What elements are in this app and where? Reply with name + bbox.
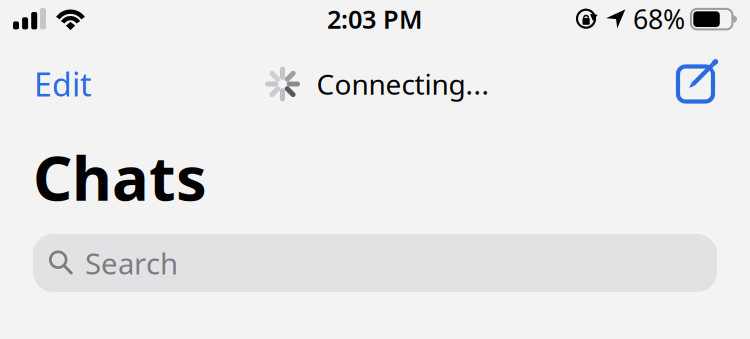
- staticText: 2:03 PM: [327, 2, 423, 36]
- staticText: Edit: [34, 63, 92, 105]
- staticText: 68%: [633, 1, 685, 37]
- button[interactable]: Search: [33, 234, 717, 292]
- staticText: Connecting...: [316, 65, 489, 103]
- staticText: Chats: [33, 136, 207, 218]
- button[interactable]: Edit: [30, 57, 96, 111]
- button[interactable]: New message: [676, 62, 720, 106]
- staticText: Search: [85, 243, 178, 282]
